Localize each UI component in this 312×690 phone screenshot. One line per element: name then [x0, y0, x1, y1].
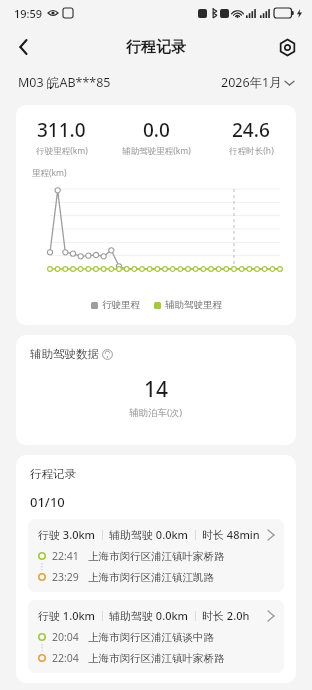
staticText: 22:41 — [52, 549, 79, 563]
staticText: 20:04 — [52, 630, 79, 644]
staticText: 辅助驾驶里程(km) — [122, 145, 191, 157]
staticText: 0.0 — [143, 117, 170, 143]
staticText: 里程(km) — [32, 167, 67, 179]
staticText: 辅助驾驶 0.0km — [109, 608, 189, 623]
button[interactable]: 2026年1月 — [221, 74, 294, 91]
staticText: 行程记录 — [126, 38, 186, 57]
staticText: 行驶 3.0km — [38, 527, 96, 542]
staticText: 14 — [144, 375, 169, 404]
staticText: 行驶里程 — [102, 299, 140, 311]
button[interactable]: 行驶 3.0km — [28, 519, 284, 592]
staticText: 辅助驾驶 0.0km — [109, 527, 189, 542]
staticText: 辅助驾驶数据 — [30, 347, 99, 361]
staticText: 311.0 — [37, 117, 86, 143]
staticText: 上海市闵行区浦江镇谈中路 — [88, 631, 214, 644]
staticText: 辅助驾驶里程 — [165, 299, 222, 311]
button[interactable]: Back — [6, 29, 42, 65]
staticText: 22:04 — [52, 651, 79, 665]
staticText: 上海市闵行区浦江镇江凯路 — [88, 571, 214, 584]
staticText: 辅助泊车(次) — [129, 406, 183, 419]
staticText: 时长 2.0h — [202, 608, 250, 623]
staticText: 行驶里程(km) — [36, 145, 88, 157]
staticText: 上海市闵行区浦江镇叶家桥路 — [88, 652, 225, 665]
staticText: 行程记录 — [30, 467, 76, 481]
staticText: 23:29 — [52, 570, 79, 584]
staticText: 01/10 — [30, 493, 65, 511]
staticText: 19:59 — [14, 6, 43, 21]
staticText: 时长 48min — [202, 527, 260, 542]
staticText: 上海市闵行区浦江镇叶家桥路 — [88, 550, 225, 563]
button[interactable]: Info — [102, 349, 113, 360]
button[interactable]: 行驶 1.0km — [28, 600, 284, 673]
staticText: M03 皖AB***85 — [18, 74, 111, 91]
button[interactable]: Settings — [270, 30, 304, 64]
staticText: 2026年1月 — [221, 74, 282, 91]
staticText: 行驶 1.0km — [38, 608, 96, 623]
staticText: 行程时长(h) — [229, 145, 274, 157]
staticText: 24.6 — [232, 117, 270, 143]
